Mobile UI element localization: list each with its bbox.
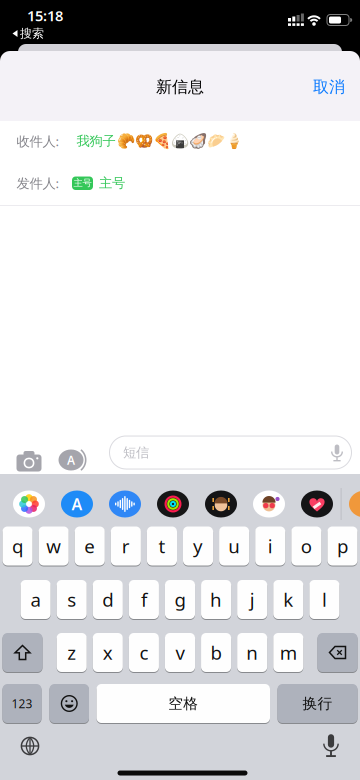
button[interactable]: y xyxy=(183,526,213,565)
button[interactable]: u xyxy=(219,526,249,565)
staticText: 我狗子 xyxy=(76,133,115,149)
staticText: A xyxy=(67,452,75,468)
button[interactable]: e xyxy=(75,526,105,565)
button[interactable]: j xyxy=(237,580,267,619)
button[interactable]: s xyxy=(57,580,87,619)
button[interactable] xyxy=(317,633,357,672)
button[interactable]: a xyxy=(21,580,51,619)
staticText: 123 xyxy=(11,695,32,711)
staticText: b xyxy=(211,640,222,665)
button[interactable]: x xyxy=(93,633,123,672)
button[interactable] xyxy=(49,684,89,723)
staticText: p xyxy=(337,534,348,558)
button[interactable]: 短信 xyxy=(109,435,352,469)
button[interactable]: k xyxy=(273,580,303,619)
staticText: 短信 xyxy=(123,444,149,461)
button[interactable]: w xyxy=(39,526,69,565)
staticText: 取消 xyxy=(313,77,345,97)
button[interactable]: 空格 xyxy=(96,684,270,723)
button[interactable] xyxy=(13,490,45,518)
staticText: 主号 xyxy=(73,177,91,189)
staticText: 收件人: xyxy=(16,132,59,150)
button[interactable]: o xyxy=(291,526,321,565)
button[interactable]: n xyxy=(237,633,267,672)
staticText: c xyxy=(139,640,148,665)
staticText: n xyxy=(246,640,258,665)
button[interactable]: 换行 xyxy=(277,684,357,723)
button[interactable]: b xyxy=(201,633,231,672)
button[interactable]: A xyxy=(58,448,90,472)
button[interactable]: 取消 xyxy=(313,77,345,97)
staticText: 换行 xyxy=(302,694,332,712)
button[interactable]: g xyxy=(165,580,195,619)
button[interactable] xyxy=(19,735,41,757)
button[interactable] xyxy=(320,734,342,756)
staticText: u xyxy=(228,534,240,558)
staticText: g xyxy=(174,587,185,612)
button[interactable]: h xyxy=(201,580,231,619)
button[interactable]: 收件人: xyxy=(0,121,360,161)
button[interactable]: p xyxy=(327,526,357,565)
staticText: k xyxy=(283,587,293,612)
staticText: e xyxy=(84,534,95,558)
staticText: 发件人: xyxy=(16,174,59,192)
staticText: y xyxy=(193,534,203,558)
button[interactable]: c xyxy=(129,633,159,672)
button[interactable] xyxy=(15,449,43,471)
button[interactable]: f xyxy=(129,580,159,619)
button[interactable]: A xyxy=(61,490,93,518)
staticText: s xyxy=(67,587,76,612)
button[interactable] xyxy=(253,490,285,518)
staticText: d xyxy=(102,587,113,612)
staticText: f xyxy=(141,587,147,612)
button[interactable]: i xyxy=(255,526,285,565)
staticText: q xyxy=(12,534,23,558)
button[interactable] xyxy=(109,490,141,518)
staticText: 15:18 xyxy=(27,6,63,25)
button[interactable]: d xyxy=(93,580,123,619)
staticText: z xyxy=(67,640,76,665)
staticText: x xyxy=(103,640,113,665)
staticText: i xyxy=(268,534,273,558)
staticText: t xyxy=(158,534,165,558)
staticText: j xyxy=(250,587,255,612)
staticText: r xyxy=(122,534,130,558)
button[interactable] xyxy=(2,633,42,672)
button[interactable]: q xyxy=(2,526,33,565)
button[interactable]: m xyxy=(273,633,303,672)
staticText: 搜索 xyxy=(20,26,44,41)
staticText: w xyxy=(46,534,61,558)
button[interactable] xyxy=(205,490,237,518)
staticText: l xyxy=(322,587,327,612)
button[interactable]: 123 xyxy=(2,684,41,723)
button[interactable] xyxy=(157,490,189,518)
staticText: 主号 xyxy=(99,175,125,191)
button[interactable]: t xyxy=(147,526,177,565)
staticText: o xyxy=(301,534,312,558)
staticText: 空格 xyxy=(168,694,198,712)
staticText: h xyxy=(210,587,222,612)
staticText: 新信息 xyxy=(156,77,204,97)
button[interactable]: z xyxy=(57,633,87,672)
button[interactable]: r xyxy=(111,526,141,565)
button[interactable]: 发件人: xyxy=(0,161,360,205)
staticText: A xyxy=(71,493,82,515)
button[interactable] xyxy=(301,490,333,518)
staticText: m xyxy=(280,640,297,665)
button[interactable]: v xyxy=(165,633,195,672)
button[interactable]: l xyxy=(309,580,339,619)
staticText: v xyxy=(175,640,184,665)
staticText: 🥐🥨🍕🍙🦪🥟🍦 xyxy=(117,133,243,149)
staticText: a xyxy=(31,587,41,612)
